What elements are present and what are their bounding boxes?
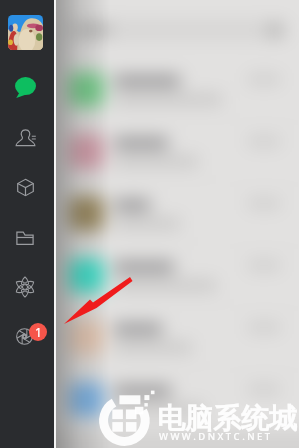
- button[interactable]: Discover: [11, 173, 39, 201]
- button[interactable]: [0, 121, 299, 183]
- button[interactable]: Contacts: [11, 123, 39, 151]
- staticText: 1: [35, 324, 42, 340]
- button[interactable]: [0, 59, 299, 121]
- staticText: 电脑系统城: [157, 401, 297, 436]
- button[interactable]: Moments: [10, 322, 38, 350]
- button[interactable]: Chats: [11, 73, 39, 101]
- button[interactable]: [0, 369, 299, 431]
- button[interactable]: [0, 183, 299, 245]
- button[interactable]: Profile: [8, 15, 43, 50]
- button[interactable]: Favorites: [11, 273, 39, 301]
- button[interactable]: [0, 307, 299, 369]
- button[interactable]: [0, 245, 299, 307]
- staticText: W W W . D N X T C . N E T: [159, 430, 271, 443]
- button[interactable]: Files: [11, 224, 39, 252]
